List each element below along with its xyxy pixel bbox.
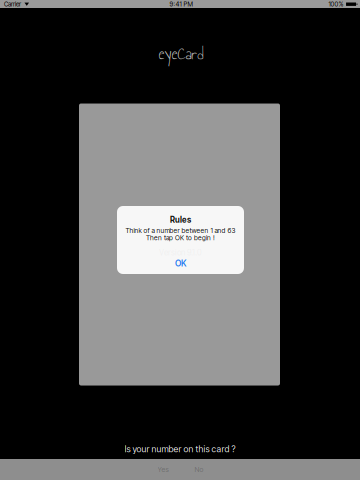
staticText: Is your number on this card ? [124, 444, 235, 454]
staticText: Carrier [4, 0, 21, 8]
button[interactable]: No [184, 459, 214, 480]
staticText: 100% [329, 0, 344, 8]
staticText: eyeCard [158, 40, 203, 67]
staticText: Rules [170, 215, 191, 225]
button[interactable]: OK [117, 253, 244, 273]
staticText: Yes [157, 465, 168, 474]
staticText: 9:41 PM [169, 0, 192, 8]
staticText: OK [175, 258, 186, 268]
staticText: No [194, 465, 203, 474]
staticText: Then tap OK to begin ! [146, 234, 215, 242]
staticText: Think of a number between 1 and 63 [125, 226, 235, 235]
button[interactable]: Yes [148, 459, 178, 480]
